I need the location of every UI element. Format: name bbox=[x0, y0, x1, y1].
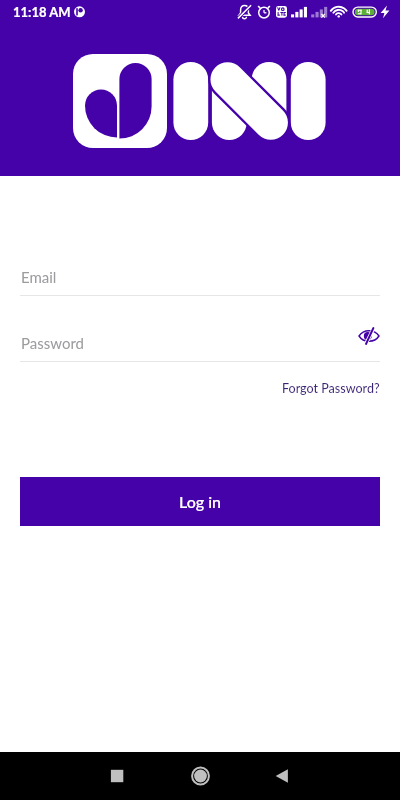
button[interactable]: Home bbox=[180, 752, 220, 800]
staticText: Forgot Password? bbox=[282, 381, 380, 396]
staticText: Email bbox=[21, 268, 57, 286]
staticText: Log in bbox=[179, 492, 221, 511]
button[interactable]: Log in bbox=[20, 477, 380, 526]
button[interactable]: Password bbox=[20, 330, 380, 362]
staticText: 11:18 AM bbox=[13, 4, 71, 20]
staticText: Password bbox=[21, 334, 84, 352]
button[interactable]: Email bbox=[20, 264, 380, 296]
button[interactable]: Recent apps bbox=[97, 752, 137, 800]
button[interactable]: Show password bbox=[355, 322, 383, 350]
button[interactable]: Back bbox=[262, 752, 302, 800]
button[interactable]: Forgot Password? bbox=[282, 381, 380, 396]
